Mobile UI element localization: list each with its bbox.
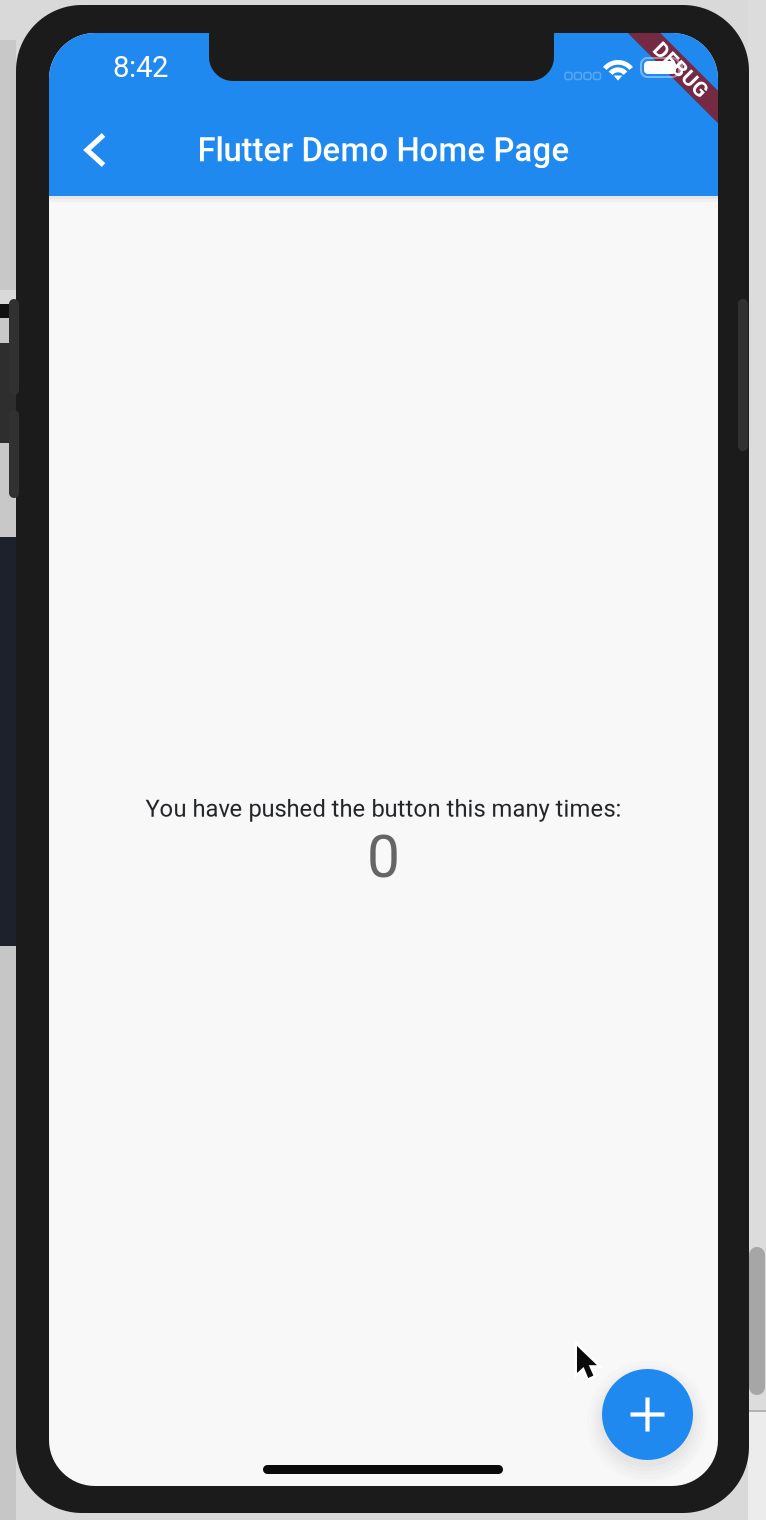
- button[interactable]: Back: [64, 121, 122, 179]
- staticText: 0: [367, 822, 400, 891]
- staticText: DEBUG: [646, 57, 715, 82]
- staticText: Flutter Demo Home Page: [197, 131, 569, 169]
- staticText: You have pushed the button this many tim…: [145, 795, 621, 822]
- staticText: 8:42: [113, 50, 168, 84]
- button[interactable]: Increment: [599, 1366, 696, 1463]
